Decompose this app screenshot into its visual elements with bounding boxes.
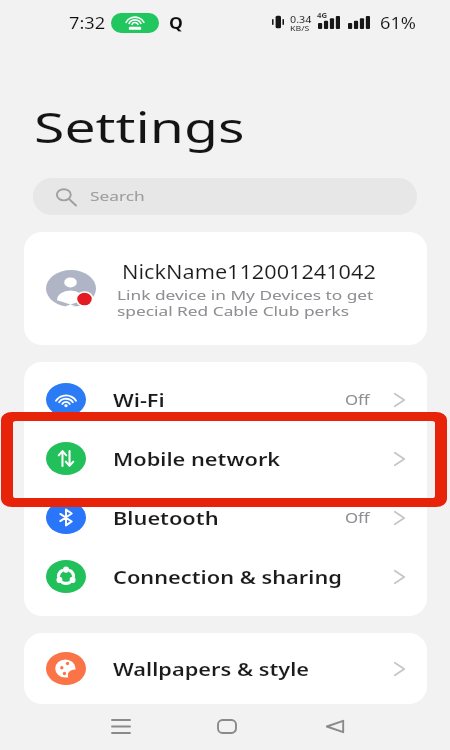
button[interactable]	[24, 548, 427, 607]
button[interactable]	[24, 430, 427, 489]
staticText: Off	[345, 390, 370, 409]
staticText: 61%	[380, 12, 416, 34]
staticText: Wi-Fi	[113, 389, 165, 412]
button[interactable]	[24, 371, 427, 430]
staticText: Link device in My Devices to get special…	[117, 286, 374, 319]
staticText: Off	[345, 508, 370, 527]
staticText: 4G	[317, 11, 328, 20]
staticText: Bluetooth	[113, 507, 219, 530]
staticText: Mobile network	[113, 448, 281, 471]
staticText: Q	[169, 12, 183, 34]
button[interactable]: Home	[202, 702, 252, 750]
staticText: KB/S	[290, 24, 310, 34]
button[interactable]: Back	[310, 702, 360, 750]
button[interactable]: Recent apps	[96, 702, 146, 750]
button[interactable]	[24, 640, 427, 699]
staticText: NickName112001241042	[122, 259, 376, 285]
staticText: 7:32	[69, 12, 105, 34]
staticText: 0.34	[290, 13, 312, 25]
staticText: Search	[90, 187, 146, 205]
staticText: Settings	[34, 99, 246, 155]
staticText: Connection & sharing	[113, 566, 342, 589]
staticText: Wallpapers & style	[113, 658, 310, 681]
button[interactable]	[24, 232, 427, 345]
button[interactable]: Search	[33, 178, 417, 215]
button[interactable]	[24, 489, 427, 548]
